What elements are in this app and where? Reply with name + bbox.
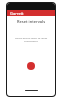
staticText: Reset intervals [7, 19, 55, 24]
staticText: Lorem ipsum dolor sit amet consectetur [10, 36, 52, 42]
staticText: Garrett [10, 11, 24, 16]
button[interactable] [27, 62, 35, 70]
